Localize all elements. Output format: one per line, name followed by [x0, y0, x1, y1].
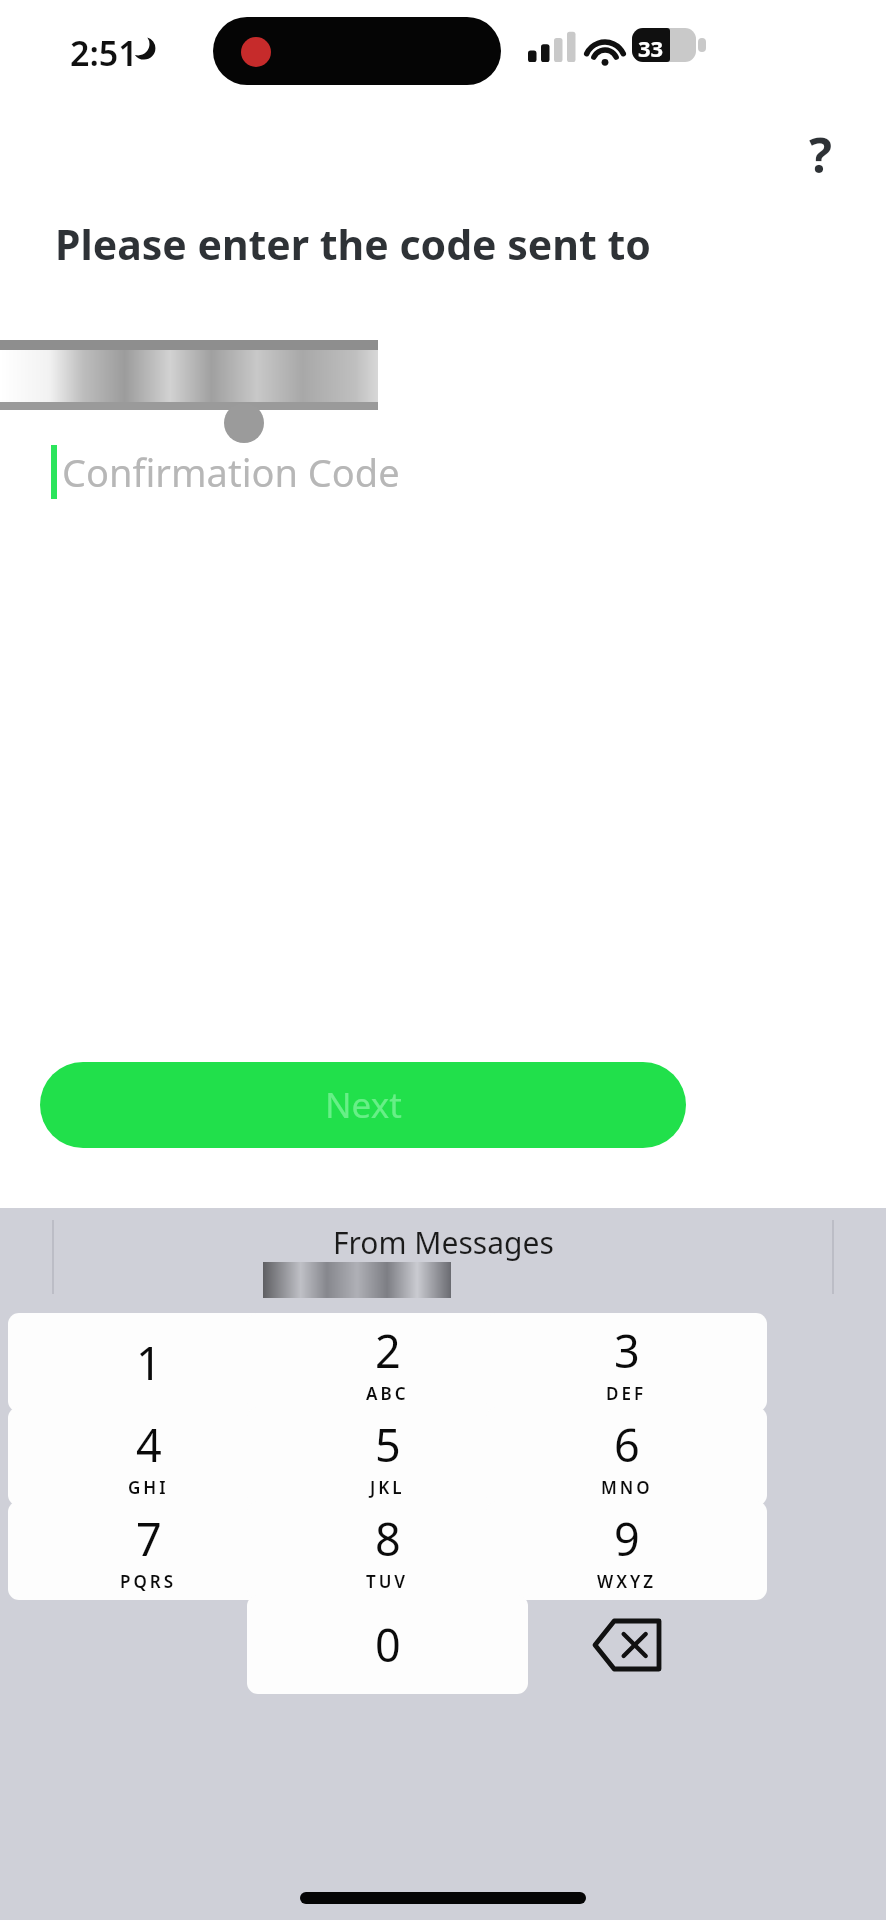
- staticText: MNO: [601, 1476, 653, 1499]
- staticText: ABC: [366, 1382, 409, 1405]
- staticText: 5: [375, 1414, 401, 1475]
- staticText: 2: [375, 1320, 401, 1381]
- staticText: 33: [638, 33, 664, 63]
- button[interactable]: 8: [247, 1501, 528, 1600]
- staticText: JKL: [370, 1476, 405, 1499]
- staticText: 2:51: [70, 30, 138, 76]
- staticText: DEF: [606, 1382, 647, 1405]
- staticText: PQRS: [120, 1570, 177, 1593]
- staticText: GHI: [128, 1476, 169, 1499]
- staticText: 7: [136, 1508, 162, 1569]
- staticText: Please enter the code sent to: [55, 216, 651, 272]
- staticText: ?: [809, 122, 832, 187]
- button[interactable]: 5: [247, 1407, 528, 1506]
- staticText: 3: [614, 1320, 640, 1381]
- button[interactable]: 3: [486, 1313, 767, 1412]
- staticText: TUV: [366, 1570, 409, 1593]
- staticText: 8: [375, 1508, 401, 1569]
- staticText: 0: [375, 1614, 401, 1675]
- staticText: 1: [136, 1332, 162, 1393]
- button[interactable]: Next: [40, 1062, 686, 1148]
- button[interactable]: Confirmation Code: [0, 425, 886, 519]
- button[interactable]: Delete: [486, 1595, 767, 1694]
- button[interactable]: 7: [8, 1501, 289, 1600]
- button[interactable]: 0: [247, 1595, 528, 1694]
- button[interactable]: 6: [486, 1407, 767, 1506]
- staticText: 6: [614, 1414, 640, 1475]
- staticText: Confirmation Code: [62, 446, 400, 498]
- staticText: Next: [325, 1081, 402, 1129]
- button[interactable]: 2: [247, 1313, 528, 1412]
- staticText: From Messages: [333, 1222, 554, 1263]
- button[interactable]: [263, 1262, 451, 1298]
- button[interactable]: 9: [486, 1501, 767, 1600]
- staticText: 9: [614, 1508, 640, 1569]
- button[interactable]: 4: [8, 1407, 289, 1506]
- staticText: WXYZ: [597, 1570, 657, 1593]
- button[interactable]: Help: [786, 112, 854, 196]
- staticText: 4: [136, 1414, 162, 1475]
- button[interactable]: 1: [8, 1313, 289, 1412]
